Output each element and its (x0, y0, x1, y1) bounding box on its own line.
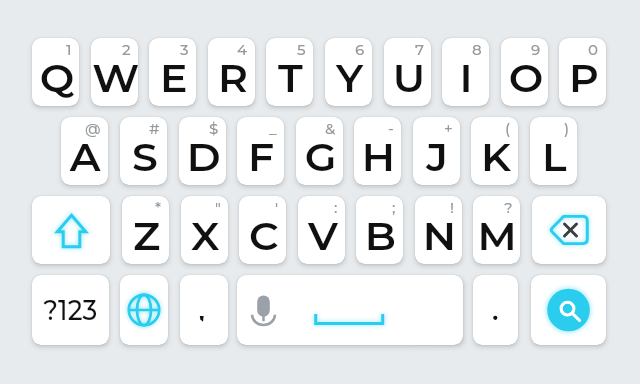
staticText: F (248, 134, 275, 180)
button[interactable]: ! (415, 196, 462, 264)
button[interactable]: 7 (384, 38, 431, 106)
staticText: 7 (415, 40, 424, 58)
staticText: 9 (531, 40, 541, 58)
button[interactable]: 1 (32, 38, 79, 106)
staticText: N (423, 213, 456, 259)
staticText: E (160, 55, 188, 101)
staticText: " (215, 198, 221, 216)
button[interactable]: : (298, 196, 345, 264)
staticText: B (365, 213, 396, 259)
button[interactable]: ) (530, 117, 577, 185)
staticText: S (132, 134, 158, 180)
staticText: L (542, 134, 567, 180)
staticText: J (426, 134, 449, 180)
staticText: C (249, 213, 279, 259)
staticText: $ (209, 119, 219, 137)
button[interactable]: $ (179, 117, 226, 185)
staticText: D (187, 134, 221, 180)
button[interactable]: ; (356, 196, 403, 264)
staticText: ; (392, 198, 396, 216)
staticText: 6 (355, 40, 365, 58)
staticText: H (362, 134, 395, 180)
staticText: _ (269, 119, 277, 137)
staticText: : (334, 198, 338, 216)
staticText: U (393, 55, 425, 101)
button[interactable]: # (120, 117, 167, 185)
staticText: I (459, 55, 473, 101)
staticText: ( (505, 119, 511, 137)
staticText: O (509, 55, 543, 101)
staticText: ' (275, 198, 279, 216)
staticText: K (481, 134, 511, 180)
staticText: 4 (237, 40, 248, 58)
button[interactable]: Backspace (532, 196, 606, 264)
button[interactable]: 0 (559, 38, 606, 106)
button[interactable]: Search (531, 275, 606, 345)
staticText: M (477, 213, 517, 259)
staticText: 5 (297, 40, 306, 58)
staticText: R (218, 55, 248, 101)
button[interactable]: @ (61, 117, 108, 185)
staticText: 0 (588, 40, 599, 58)
staticText: T (278, 55, 303, 101)
button[interactable]: 4 (208, 38, 255, 106)
staticText: W (92, 55, 138, 101)
button[interactable]: _ (237, 117, 284, 185)
button[interactable]: 5 (266, 38, 313, 106)
staticText: # (149, 119, 160, 137)
button[interactable]: Space (237, 275, 463, 345)
staticText: Y (336, 55, 364, 101)
button[interactable]: + (413, 117, 460, 185)
button[interactable]: ? (473, 196, 520, 264)
button[interactable]: Change language (120, 275, 168, 345)
staticText: ! (450, 198, 455, 216)
staticText: P (569, 55, 599, 101)
staticText: G (305, 134, 337, 180)
staticText: @ (85, 119, 101, 137)
button[interactable]: Shift (32, 196, 110, 264)
button[interactable]: 6 (325, 38, 372, 106)
staticText: 2 (122, 40, 131, 58)
button[interactable]: ?123 (32, 275, 109, 345)
button[interactable]: " (181, 196, 228, 264)
staticText: X (191, 213, 220, 259)
button[interactable]: 3 (149, 38, 196, 106)
button[interactable]: * (122, 196, 169, 264)
staticText: V (308, 213, 338, 259)
staticText: - (388, 119, 394, 137)
staticText: 8 (472, 40, 482, 58)
button[interactable] (180, 275, 228, 345)
button[interactable] (473, 275, 518, 345)
button[interactable]: ( (471, 117, 518, 185)
button[interactable]: 9 (501, 38, 548, 106)
staticText: ) (564, 119, 570, 137)
button[interactable]: ' (239, 196, 286, 264)
staticText: & (325, 119, 336, 137)
staticText: * (155, 198, 162, 216)
button[interactable]: - (354, 117, 401, 185)
button[interactable]: 2 (91, 38, 138, 106)
staticText: Z (133, 213, 161, 259)
button[interactable]: 8 (442, 38, 489, 106)
staticText: 3 (180, 40, 189, 58)
staticText: Q (40, 55, 74, 101)
button[interactable]: & (296, 117, 343, 185)
staticText: ? (504, 198, 513, 216)
staticText: 1 (66, 40, 72, 58)
staticText: A (70, 134, 101, 180)
staticText: + (444, 119, 453, 137)
staticText: ?123 (43, 293, 98, 327)
